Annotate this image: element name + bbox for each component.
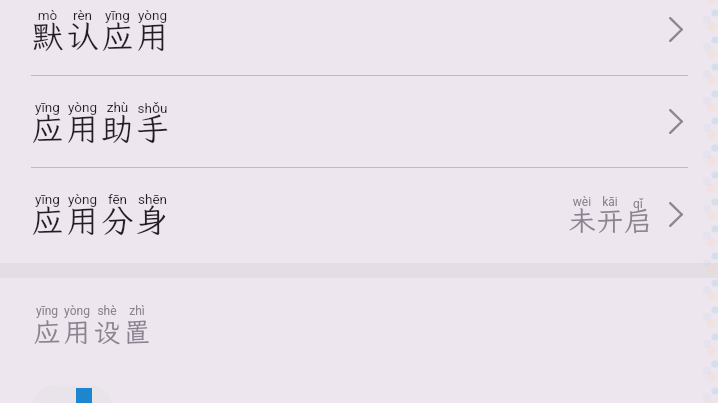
staticText: fēn (100, 191, 135, 207)
other: Open (669, 202, 683, 227)
staticText: 分 (100, 199, 135, 241)
staticText: yīng (30, 99, 65, 115)
staticText: 助 (100, 107, 135, 149)
staticText: yīng (100, 7, 135, 23)
staticText: 用 (65, 107, 100, 149)
staticText: shǒu (135, 99, 170, 117)
staticText: yòng (65, 99, 100, 115)
staticText: 应 (30, 199, 65, 241)
staticText: 默 (30, 15, 65, 57)
staticText: qǐ (624, 195, 652, 211)
staticText: kāi (596, 195, 624, 209)
staticText: yòng (135, 7, 170, 23)
staticText: 应 (30, 107, 65, 149)
button[interactable]: 默 (0, 0, 718, 75)
staticText: yòng (62, 304, 92, 318)
staticText: 设 (92, 314, 122, 350)
button[interactable]: 应 (0, 167, 718, 262)
staticText: mò (30, 7, 65, 23)
staticText: 用 (135, 15, 170, 57)
staticText: yīng (32, 304, 62, 318)
staticText: zhì (122, 304, 152, 318)
staticText: 认 (65, 15, 100, 57)
staticText: shè (92, 304, 122, 318)
other: Open (669, 17, 683, 42)
staticText: 应 (100, 15, 135, 57)
other: Open (669, 109, 683, 134)
staticText: 手 (135, 107, 170, 149)
staticText: 启 (624, 203, 652, 239)
staticText: 置 (122, 314, 152, 350)
button[interactable]: 应 (0, 75, 718, 167)
staticText: 应 (32, 314, 62, 350)
staticText: yòng (65, 191, 100, 207)
staticText: 未 (568, 203, 596, 239)
staticText: zhù (100, 99, 135, 115)
staticText: yīng (30, 191, 65, 207)
staticText: 身 (135, 199, 170, 241)
staticText: 用 (62, 314, 92, 350)
staticText: wèi (568, 195, 596, 209)
staticText: rèn (65, 7, 100, 23)
staticText: 用 (65, 199, 100, 241)
staticText: shēn (135, 191, 170, 207)
staticText: 开 (596, 203, 624, 239)
